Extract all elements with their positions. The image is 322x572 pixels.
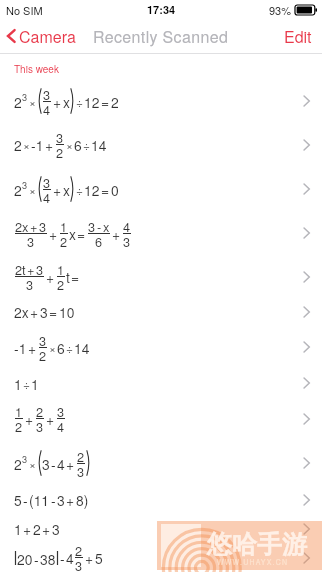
staticText: x: [69, 224, 76, 244]
staticText: 12: [84, 180, 100, 200]
staticText: -: [23, 490, 28, 510]
staticText: 4: [123, 217, 131, 235]
staticText: +: [28, 338, 37, 358]
staticText: 14: [91, 135, 107, 155]
button[interactable]: 5: [0, 485, 322, 514]
button[interactable]: 2: [0, 123, 322, 166]
staticText: This week: [14, 62, 59, 76]
staticText: 1: [15, 402, 23, 420]
staticText: 3: [52, 519, 60, 539]
staticText: ÷: [76, 181, 83, 198]
staticText: WWW.UHAYX.CN: [217, 557, 289, 567]
staticText: +: [30, 302, 39, 322]
staticText: ÷: [23, 375, 30, 392]
staticText: 2: [60, 232, 68, 250]
staticText: 悠哈手游: [207, 529, 307, 560]
staticText: +: [85, 548, 94, 568]
staticText: 3: [22, 178, 28, 191]
staticText: 3: [27, 232, 35, 250]
staticText: 3: [40, 302, 48, 322]
staticText: 3: [57, 402, 65, 420]
staticText: ×: [29, 93, 36, 110]
staticText: +: [112, 224, 121, 244]
staticText: 8): [76, 490, 89, 510]
staticText: 1: [57, 260, 65, 278]
button[interactable]: 2: [0, 440, 322, 485]
staticText: 3: [22, 452, 28, 465]
staticText: -: [51, 490, 56, 510]
staticText: =: [49, 302, 58, 322]
staticText: 1: [14, 519, 22, 539]
staticText: (11: [29, 490, 50, 510]
staticText: 38: [40, 549, 56, 569]
staticText: t: [66, 267, 70, 287]
staticText: +: [23, 519, 32, 539]
staticText: Camera: [19, 25, 76, 48]
staticText: ×: [23, 136, 30, 153]
staticText: 3: [43, 85, 51, 103]
staticText: +: [45, 135, 54, 155]
staticText: -: [51, 454, 56, 474]
staticText: +: [46, 267, 55, 287]
button[interactable]: 2: [0, 78, 322, 123]
staticText: 3: [77, 462, 85, 480]
button[interactable]: 2t: [0, 255, 322, 298]
button[interactable]: 1: [0, 397, 322, 440]
staticText: =: [101, 92, 110, 112]
staticText: 2: [14, 135, 22, 155]
staticText: 3: [39, 217, 47, 235]
staticText: -1: [31, 135, 44, 155]
staticText: 2: [14, 180, 22, 200]
staticText: 4: [43, 188, 51, 206]
button[interactable]: Edit: [274, 19, 322, 53]
staticText: No SIM: [6, 2, 43, 18]
staticText: 0: [111, 180, 119, 200]
staticText: 12: [84, 92, 100, 112]
button[interactable]: 2x: [0, 211, 322, 255]
button[interactable]: Back: [0, 19, 84, 53]
staticText: 2: [111, 92, 119, 112]
staticText: x: [63, 92, 70, 112]
staticText: 2: [77, 447, 85, 465]
staticText: 3: [39, 331, 47, 349]
staticText: 2: [14, 454, 22, 474]
staticText: 4: [57, 454, 65, 474]
staticText: 6: [95, 232, 103, 250]
staticText: +: [53, 92, 62, 112]
staticText: x: [103, 217, 110, 235]
button[interactable]: 1: [0, 514, 322, 543]
staticText: 3: [42, 454, 50, 474]
button[interactable]: 2x: [0, 298, 322, 325]
staticText: Recently Scanned: [93, 25, 229, 48]
staticText: ×: [29, 181, 36, 198]
staticText: 3: [36, 260, 44, 278]
staticText: +: [30, 217, 38, 235]
staticText: ×: [49, 339, 56, 356]
staticText: 2: [56, 143, 64, 161]
staticText: +: [66, 454, 75, 474]
staticText: 2: [15, 417, 23, 435]
other: Back: [7, 29, 15, 43]
staticText: -1: [14, 338, 27, 358]
staticText: 3: [75, 556, 83, 572]
staticText: 2: [39, 346, 47, 364]
staticText: 3: [123, 232, 131, 250]
staticText: ÷: [76, 93, 83, 110]
staticText: +: [53, 180, 62, 200]
button[interactable]: 20: [0, 543, 322, 572]
staticText: +: [49, 224, 58, 244]
staticText: ÷: [66, 339, 73, 356]
staticText: 4: [43, 100, 51, 118]
staticText: 5: [14, 490, 22, 510]
button[interactable]: 1: [0, 369, 322, 397]
button[interactable]: 2: [0, 166, 322, 211]
button[interactable]: -1: [0, 325, 322, 369]
staticText: 6: [74, 135, 82, 155]
staticText: +: [27, 260, 35, 278]
staticText: =: [71, 267, 80, 287]
staticText: 14: [74, 338, 90, 358]
staticText: 2: [14, 92, 22, 112]
staticText: 2: [57, 275, 65, 293]
staticText: 4: [57, 417, 65, 435]
staticText: 3: [57, 490, 65, 510]
